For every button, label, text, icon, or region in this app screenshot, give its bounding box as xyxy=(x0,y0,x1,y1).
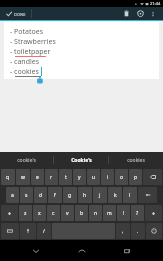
button[interactable]: o xyxy=(115,169,128,185)
staticText: , xyxy=(122,228,124,235)
staticText: . xyxy=(137,228,139,235)
staticText: i xyxy=(107,174,109,181)
button[interactable]: Emoji xyxy=(146,223,162,239)
staticText: f xyxy=(54,192,56,199)
button[interactable]: n xyxy=(89,205,102,221)
staticText: - Potatoes xyxy=(10,27,44,37)
staticText: b xyxy=(80,210,84,217)
button[interactable]: ! xyxy=(117,205,130,221)
button[interactable]: j xyxy=(93,187,107,203)
staticText: x xyxy=(38,210,41,217)
button[interactable]: ? xyxy=(131,205,144,221)
button[interactable]: s xyxy=(20,187,33,203)
staticText: d xyxy=(39,192,43,199)
staticText: g xyxy=(68,192,72,199)
staticText: y xyxy=(78,174,81,181)
staticText: - Strawberries xyxy=(10,37,56,47)
button[interactable]: Delete xyxy=(119,7,133,20)
staticText: DONE xyxy=(14,12,26,17)
button[interactable]: e xyxy=(31,169,44,185)
staticText: j xyxy=(99,192,101,199)
staticText: cookie's xyxy=(17,157,36,164)
staticText: q xyxy=(6,174,10,181)
staticText: cookies xyxy=(127,157,145,164)
staticText: m xyxy=(107,210,112,217)
button[interactable]: Home xyxy=(72,241,92,261)
staticText: - cookies xyxy=(10,67,39,77)
button[interactable]: l xyxy=(123,187,137,203)
button[interactable] xyxy=(1,205,18,221)
button[interactable]: c xyxy=(47,205,60,221)
staticText: u xyxy=(92,174,96,181)
staticText: n xyxy=(94,210,98,217)
staticText: - candles xyxy=(10,57,40,67)
staticText: a xyxy=(11,192,14,199)
staticText: ! xyxy=(123,210,125,217)
staticText: l xyxy=(129,192,131,199)
button[interactable]: cookies xyxy=(109,152,163,168)
button[interactable]: v xyxy=(61,205,74,221)
button[interactable]: w xyxy=(16,169,30,185)
button[interactable]: t xyxy=(59,169,72,185)
staticText: ? xyxy=(136,210,139,217)
staticText: v xyxy=(66,210,69,217)
button[interactable]: DONE xyxy=(4,10,28,18)
staticText: 21:44 xyxy=(150,1,161,6)
button[interactable]: , xyxy=(116,223,130,239)
button[interactable]: . xyxy=(131,223,145,239)
button[interactable]: Hide keyboard xyxy=(26,241,46,261)
staticText: / xyxy=(43,228,45,235)
button[interactable]: Switch keyboard xyxy=(1,223,19,239)
staticText: r xyxy=(50,174,53,181)
staticText: s xyxy=(25,192,28,199)
button[interactable]: f xyxy=(48,187,62,203)
staticText: p xyxy=(134,174,138,181)
button[interactable] xyxy=(145,205,162,221)
button[interactable]: Enter xyxy=(138,187,157,203)
staticText: Cookie's xyxy=(71,157,92,164)
button[interactable]: Cookie's xyxy=(54,152,108,168)
button[interactable]: h xyxy=(78,187,92,203)
button[interactable]: Backspace xyxy=(143,169,162,185)
button[interactable]: d xyxy=(34,187,47,203)
button[interactable]: Reminder xyxy=(133,7,147,20)
staticText: k xyxy=(114,192,117,199)
button[interactable]: More options xyxy=(147,8,159,20)
button[interactable]: / xyxy=(37,223,51,239)
button[interactable]: r xyxy=(45,169,58,185)
button[interactable]: Voice input xyxy=(20,223,36,239)
button[interactable]: - Potatoes xyxy=(4,22,159,79)
button[interactable]: q xyxy=(1,169,15,185)
staticText: t xyxy=(65,174,67,181)
button[interactable]: y xyxy=(73,169,86,185)
staticText: c xyxy=(52,210,55,217)
button[interactable]: z xyxy=(19,205,32,221)
staticText: z xyxy=(24,210,27,217)
button[interactable]: b xyxy=(75,205,88,221)
button[interactable]: a xyxy=(6,187,19,203)
button[interactable]: Recent apps xyxy=(117,241,137,261)
button[interactable]: g xyxy=(63,187,77,203)
button[interactable]: cookie's xyxy=(0,152,53,168)
staticText: e xyxy=(36,174,39,181)
button[interactable]: k xyxy=(108,187,122,203)
staticText: w xyxy=(21,174,25,181)
staticText: o xyxy=(120,174,124,181)
button[interactable]: i xyxy=(101,169,114,185)
button[interactable]: m xyxy=(103,205,116,221)
staticText: - toiletpaper xyxy=(10,47,51,57)
staticText: h xyxy=(83,192,87,199)
button[interactable]: x xyxy=(33,205,46,221)
button[interactable]: p xyxy=(129,169,142,185)
button[interactable]: u xyxy=(87,169,100,185)
